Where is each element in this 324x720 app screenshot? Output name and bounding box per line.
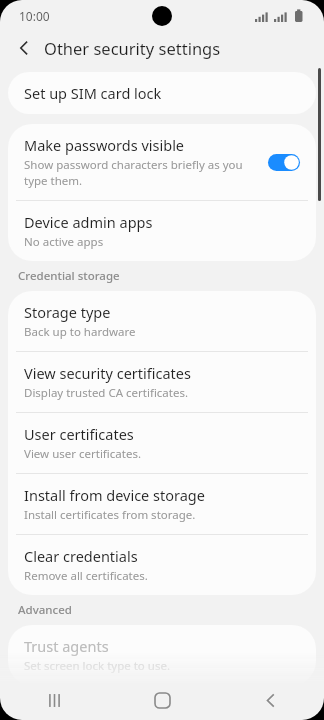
staticText: Install certificates from storage.: [24, 507, 196, 523]
staticText: No active apps: [24, 234, 104, 250]
button[interactable]: View security certificates: [8, 352, 316, 412]
staticText: Credential storage: [18, 268, 120, 284]
staticText: Storage type: [24, 302, 111, 322]
button[interactable]: Clear credentials: [8, 535, 316, 595]
button[interactable]: Back: [8, 32, 40, 64]
staticText: Show password characters briefly as you …: [24, 157, 256, 189]
staticText: Set screen lock type to use.: [24, 658, 170, 674]
staticText: User certificates: [24, 424, 134, 444]
staticText: Make passwords visible: [24, 135, 185, 155]
staticText: 10:00: [19, 8, 50, 24]
button[interactable]: Recents: [0, 680, 108, 720]
staticText: View security certificates: [24, 363, 191, 383]
staticText: Clear credentials: [24, 546, 138, 566]
button[interactable]: Device admin apps: [8, 201, 316, 261]
staticText: Trust agents: [24, 636, 109, 656]
button[interactable]: Trust agents: [8, 625, 316, 685]
button[interactable]: Make passwords visible: [8, 124, 316, 200]
staticText: Install from device storage: [24, 485, 205, 505]
staticText: Remove all certificates.: [24, 568, 148, 584]
staticText: Set up SIM card lock: [24, 83, 162, 103]
button[interactable]: Install from device storage: [8, 474, 316, 534]
button[interactable]: Back: [216, 680, 324, 720]
staticText: Back up to hardware: [24, 324, 136, 340]
staticText: Device admin apps: [24, 212, 153, 232]
staticText: View user certificates.: [24, 446, 141, 462]
staticText: Other security settings: [44, 37, 221, 59]
staticText: Advanced: [18, 602, 72, 618]
button[interactable]: Set up SIM card lock: [8, 72, 316, 114]
button[interactable]: User certificates: [8, 413, 316, 473]
staticText: Display trusted CA certificates.: [24, 385, 189, 401]
button[interactable]: Home: [108, 680, 216, 720]
button[interactable]: Make passwords visible toggle: [266, 150, 302, 174]
button[interactable]: Storage type: [8, 291, 316, 351]
